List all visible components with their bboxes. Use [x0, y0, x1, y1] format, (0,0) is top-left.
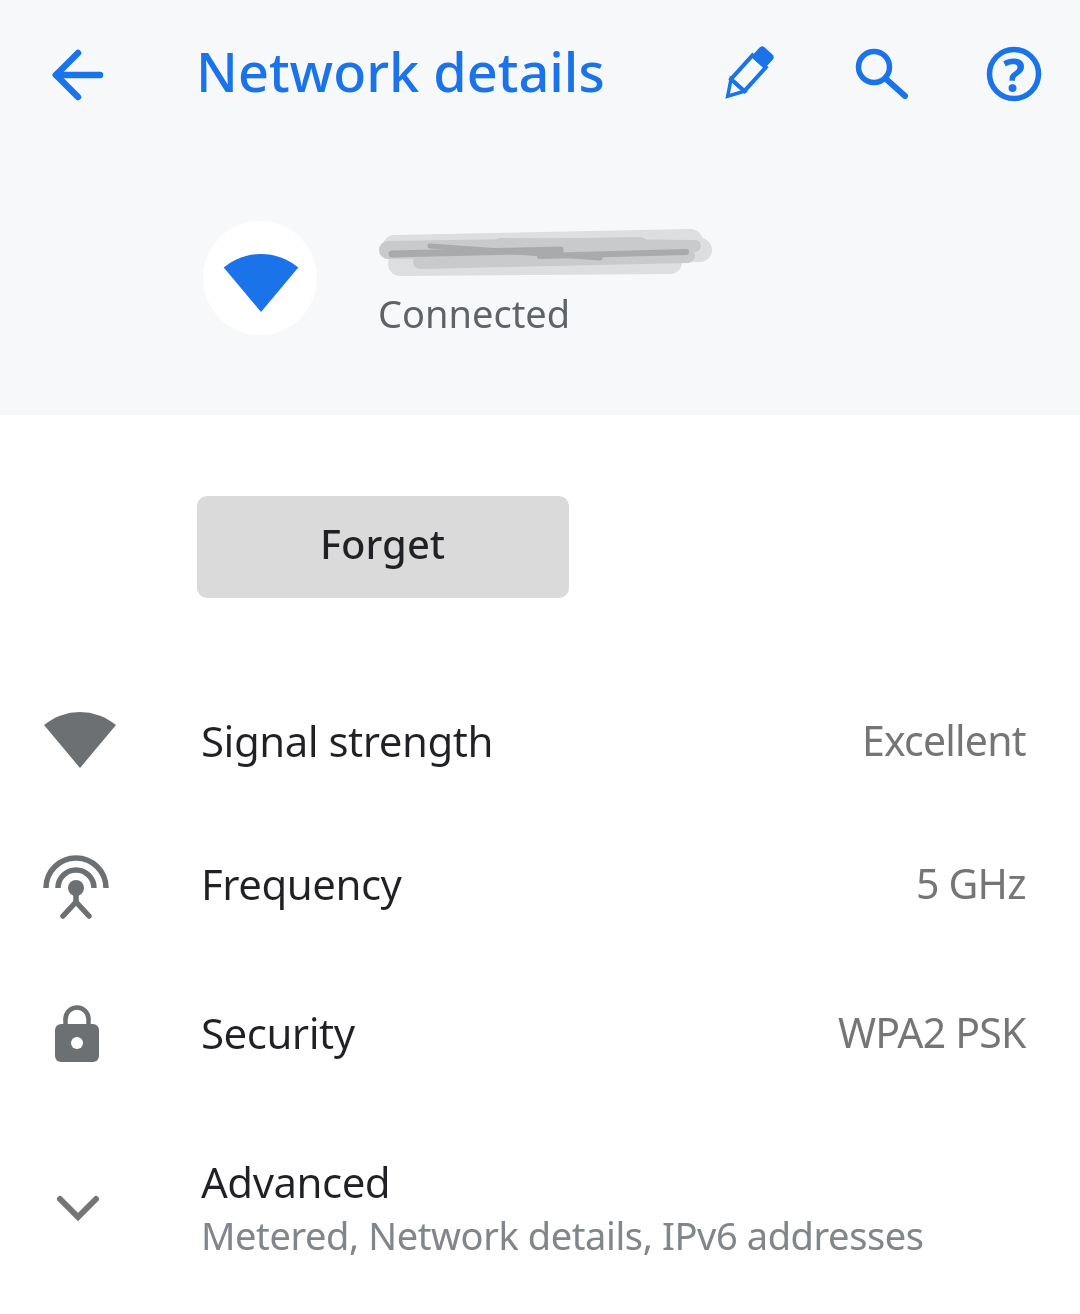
staticText: Connected: [378, 287, 571, 339]
staticText: Excellent: [862, 712, 1026, 768]
staticText: Advanced: [201, 1153, 391, 1210]
staticText: Signal strength: [201, 712, 493, 769]
button[interactable]: [715, 42, 781, 108]
staticText: 5 GHz: [916, 855, 1026, 911]
button[interactable]: Forget: [197, 496, 569, 598]
staticText: Forget: [320, 516, 446, 570]
button[interactable]: [845, 42, 911, 108]
staticText: Security: [201, 1004, 355, 1061]
button[interactable]: Frequency: [0, 821, 1080, 945]
button[interactable]: Signal strength: [0, 678, 1080, 802]
button[interactable]: Advanced: [0, 1145, 1080, 1285]
staticText: Frequency: [201, 855, 402, 912]
staticText: ?: [1003, 43, 1025, 106]
button[interactable]: ?: [981, 41, 1047, 107]
button[interactable]: Security: [0, 970, 1080, 1094]
staticText: WPA2 PSK: [838, 1004, 1026, 1060]
staticText: Metered, Network details, IPv6 addresses: [201, 1209, 924, 1261]
staticText: Network details: [196, 34, 605, 108]
button[interactable]: [40, 40, 110, 110]
